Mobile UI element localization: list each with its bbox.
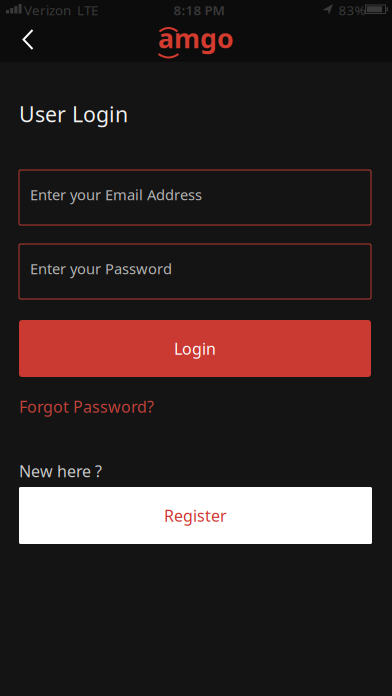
staticText: Register [164, 505, 227, 526]
staticText: Verizon LTE [24, 1, 98, 19]
staticText: amgo [158, 20, 234, 56]
button[interactable] [0, 20, 56, 62]
staticText: Enter your Email Address [30, 185, 202, 204]
staticText: Forgot Password? [19, 396, 154, 417]
staticText: User Login [19, 100, 128, 128]
staticText: 8:18 PM [173, 1, 224, 19]
button[interactable]: Forgot Password? [19, 396, 154, 417]
staticText: New here ? [19, 460, 102, 482]
button[interactable]: Register [19, 487, 372, 544]
staticText: Login [174, 338, 216, 359]
button[interactable]: Enter your Password [19, 244, 371, 299]
staticText: 83% [338, 1, 365, 19]
staticText: Enter your Password [30, 259, 172, 278]
button[interactable]: Login [19, 320, 371, 377]
button[interactable]: Enter your Email Address [19, 170, 371, 225]
